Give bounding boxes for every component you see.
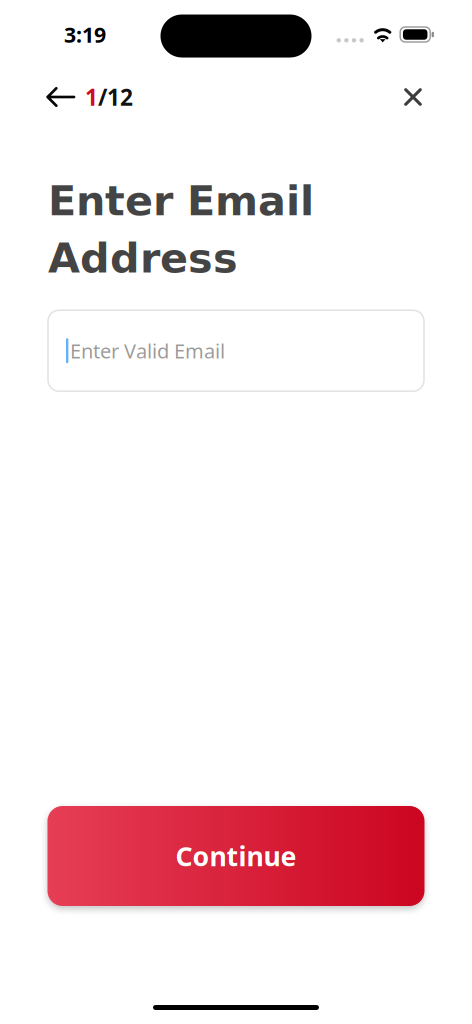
button[interactable]: Continue (47, 806, 424, 906)
button[interactable]: Close (393, 77, 433, 117)
staticText: Enter Email (48, 177, 314, 225)
staticText: 3:19 (64, 20, 106, 49)
staticText: Address (48, 234, 238, 282)
button[interactable]: 1 (46, 77, 133, 117)
button[interactable]: Enter Valid Email (48, 310, 424, 391)
staticText: Enter Valid Email (70, 337, 225, 364)
staticText: /12 (98, 82, 133, 112)
staticText: 1 (85, 82, 98, 112)
staticText: Continue (175, 838, 296, 874)
